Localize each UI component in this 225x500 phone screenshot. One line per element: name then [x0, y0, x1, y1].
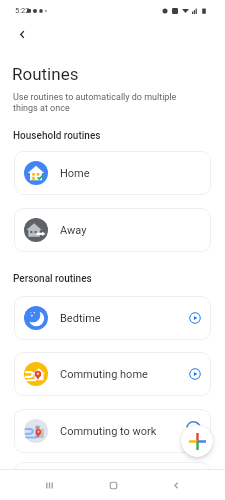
staticText: Household routines	[13, 130, 101, 142]
staticText: Away	[60, 224, 87, 237]
button[interactable]: Home	[14, 151, 211, 195]
button[interactable]: Bedtime	[14, 296, 211, 340]
staticText: Use routines to automatically do multipl…	[13, 92, 190, 114]
button[interactable]: Recent apps	[34, 470, 64, 500]
button[interactable]: Running	[186, 421, 201, 436]
staticText: Home	[60, 167, 90, 180]
button[interactable]: Home	[98, 470, 128, 500]
staticText: Commuting home	[60, 368, 148, 381]
button[interactable]: Back	[161, 470, 191, 500]
button[interactable]: Play routine	[189, 312, 201, 324]
staticText: 5:22	[15, 6, 30, 15]
staticText: Commuting to work	[60, 425, 157, 438]
button[interactable]	[14, 462, 211, 500]
button[interactable]: Add routine	[181, 425, 213, 457]
staticText: Bedtime	[60, 312, 101, 325]
button[interactable]: Commuting to work	[14, 409, 211, 453]
button[interactable]: Back	[12, 24, 32, 44]
staticText: Personal routines	[13, 273, 92, 285]
button[interactable]: Away	[14, 208, 211, 252]
staticText: Routines	[12, 64, 79, 84]
button[interactable]: Commuting home	[14, 352, 211, 396]
button[interactable]: Play routine	[189, 368, 201, 380]
